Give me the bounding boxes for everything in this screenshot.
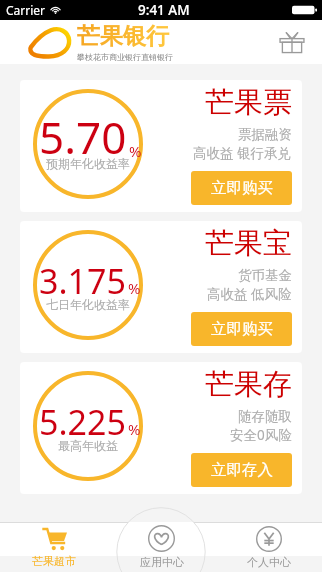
staticText: 立即购买: [211, 178, 273, 198]
button[interactable]: 芒果超市: [0, 522, 108, 572]
staticText: %: [128, 419, 141, 439]
staticText: 芒果银行: [77, 22, 169, 51]
staticText: 货币基金: [238, 267, 292, 284]
staticText: 芒果宝: [205, 225, 292, 262]
staticText: 立即存入: [211, 460, 273, 480]
button[interactable]: Gifts: [274, 24, 310, 60]
staticText: 立即购买: [211, 319, 273, 339]
staticText: 高收益 低风险: [207, 285, 292, 303]
staticText: 高收益 银行承兑: [193, 144, 292, 162]
staticText: 票据融资: [238, 126, 292, 143]
button[interactable]: 5.70: [20, 80, 302, 212]
staticText: 应用中心: [140, 555, 184, 569]
staticText: 芒果存: [205, 366, 292, 403]
staticText: 七日年化收益率: [46, 297, 130, 312]
staticText: 9:41 AM: [138, 1, 190, 19]
button[interactable]: 应用中心: [108, 522, 215, 572]
button[interactable]: 个人中心: [215, 522, 322, 572]
staticText: 5.225: [39, 399, 126, 445]
staticText: 芒果票: [205, 84, 292, 121]
staticText: 随存随取: [238, 408, 292, 425]
staticText: 个人中心: [247, 555, 291, 569]
button[interactable]: 立即购买: [191, 171, 292, 205]
staticText: 3.175: [39, 258, 126, 304]
staticText: 芒果超市: [32, 554, 76, 568]
staticText: 预期年化收益率: [46, 156, 130, 171]
button[interactable]: 立即存入: [191, 453, 292, 487]
button[interactable]: 5.225: [20, 362, 302, 494]
staticText: %: [128, 278, 141, 298]
button[interactable]: 立即购买: [191, 312, 292, 346]
staticText: 5.70: [39, 107, 127, 167]
button[interactable]: 3.175: [20, 221, 302, 353]
staticText: %: [129, 141, 142, 161]
staticText: 攀枝花市商业银行直销银行: [77, 52, 173, 62]
staticText: 最高年收益: [58, 438, 118, 453]
staticText: Carrier: [6, 2, 46, 18]
staticText: 安全0风险: [230, 426, 292, 444]
